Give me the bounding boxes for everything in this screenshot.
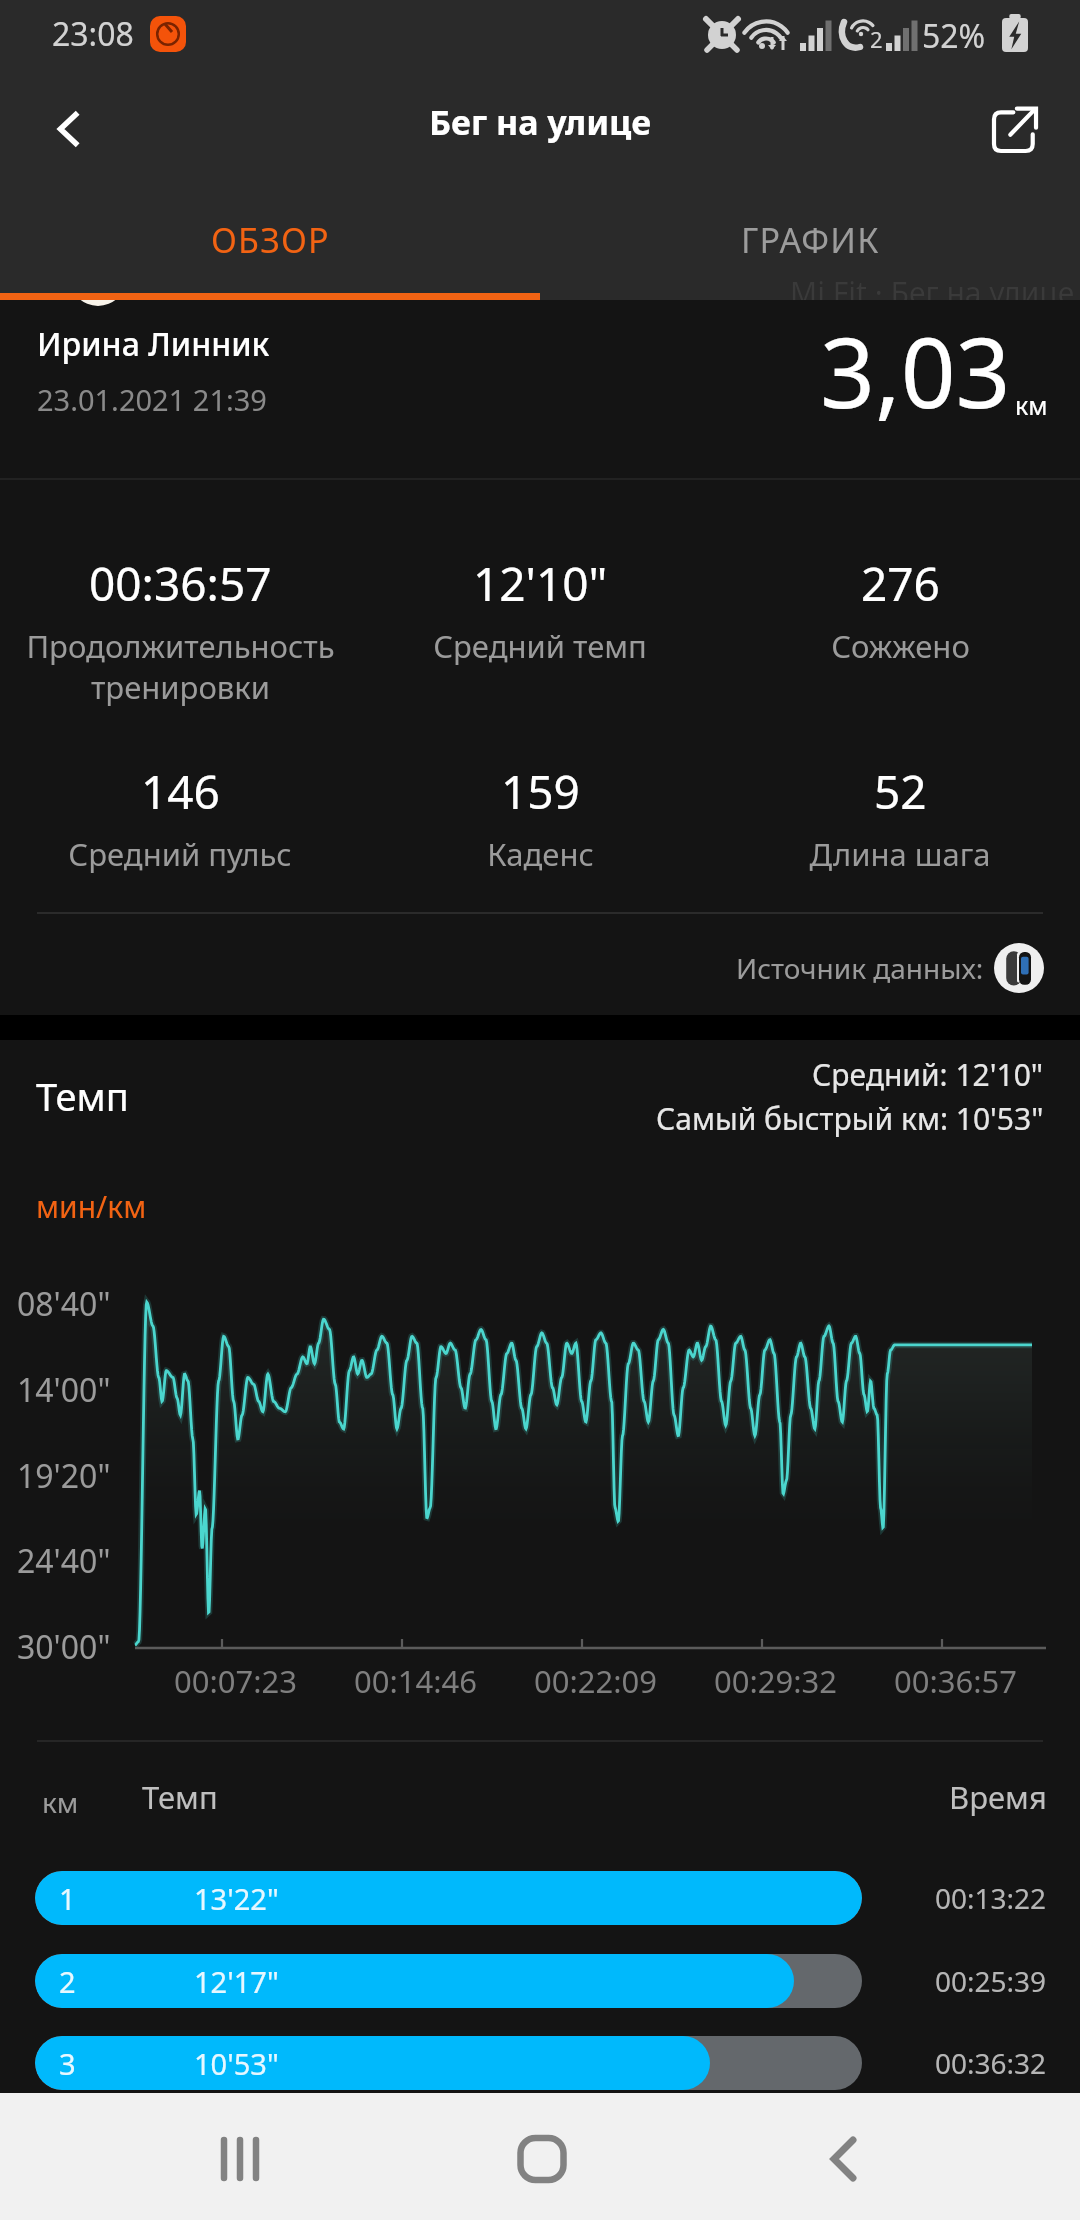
button[interactable]: 2 [0,1954,1080,2008]
staticText: Средний пульс [68,833,292,875]
staticText: 52% [922,14,986,58]
staticText: Темп [36,1070,129,1122]
staticText: Источник данных: [736,949,984,987]
button[interactable]: Home [482,2099,602,2219]
button[interactable]: 1 [0,1871,1080,1925]
staticText: 13'22" [194,1879,279,1918]
staticText: 14'00" [17,1368,111,1412]
staticText: км [1015,388,1048,422]
staticText: 00:14:46 [354,1660,478,1702]
staticText: 23.01.2021 21:39 [37,380,267,419]
staticText: 146 [141,760,220,823]
staticText: Время [949,1776,1047,1818]
button[interactable]: Back [783,2099,903,2219]
staticText: Mi Fit · Бег на улице [790,272,1075,313]
staticText: Средний: 12'10" [812,1054,1044,1095]
staticText: 00:07:23 [174,1660,298,1702]
staticText: 08'40" [17,1282,111,1326]
staticText: Средний темп [433,625,647,667]
staticText: 3,03 [820,305,1011,436]
staticText: 00:36:57 [894,1660,1018,1702]
staticText: ОБЗОР [211,217,330,263]
staticText: Бег на улице [429,99,652,145]
staticText: мин/км [36,1186,147,1227]
staticText: 00:29:32 [714,1660,838,1702]
staticText: км [42,1783,79,1821]
button[interactable]: ОБЗОР [0,190,540,300]
staticText: 1 [59,1879,76,1918]
button[interactable]: 3 [0,2036,1080,2090]
staticText: 00:36:32 [935,2044,1047,2082]
button[interactable]: Data source device [994,943,1044,993]
staticText: Темп [142,1776,218,1818]
staticText: 2 [59,1962,76,2001]
staticText: 30'00" [17,1625,111,1669]
staticText: Сожжено [831,625,970,667]
staticText: 00:36:57 [89,552,272,615]
button[interactable]: Back [28,87,112,171]
staticText: 276 [861,552,940,615]
staticText: 159 [501,760,580,823]
staticText: 52 [874,760,927,823]
staticText: 10'53" [194,2044,279,2083]
button[interactable]: Recent apps [180,2099,300,2219]
staticText: 2 [870,24,883,54]
staticText: 00:25:39 [935,1962,1047,2000]
staticText: Ирина Линник [37,322,270,366]
staticText: 00:13:22 [935,1879,1047,1917]
staticText: 23:08 [52,12,134,56]
staticText: 24'40" [17,1539,111,1583]
staticText: 12'17" [194,1962,279,2001]
button[interactable]: Share [974,87,1058,171]
staticText: Длина шага [809,833,991,875]
staticText: 00:22:09 [534,1660,658,1702]
staticText: Самый быстрый км: 10'53" [656,1098,1044,1139]
staticText: 3 [59,2044,76,2083]
staticText: ГРАФИК [741,217,880,263]
staticText: Каденс [487,833,594,875]
staticText: 12'10" [473,552,608,615]
staticText: 19'20" [17,1454,111,1498]
staticText: Продолжительность тренировки [26,625,335,708]
button[interactable]: ГРАФИК [540,190,1080,300]
